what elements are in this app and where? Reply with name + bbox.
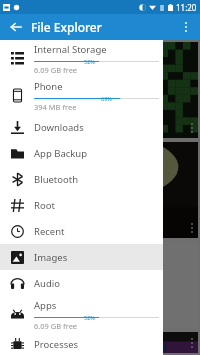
staticText: Downloads	[34, 121, 84, 134]
staticText: 52%	[84, 58, 95, 64]
staticText: Root	[34, 199, 55, 212]
button[interactable]: More options	[176, 17, 196, 37]
button[interactable]: Downloads	[0, 114, 163, 140]
button[interactable]: Phone	[0, 77, 163, 114]
button[interactable]: Internal Storage	[0, 40, 163, 77]
button[interactable]: App Backup	[0, 140, 163, 166]
staticText: 69%	[101, 95, 112, 101]
staticText: 52%	[84, 314, 95, 320]
button[interactable]: Audio	[0, 270, 163, 296]
button[interactable]: Root	[0, 192, 163, 218]
staticText: 394 MB free	[34, 102, 77, 112]
button[interactable]: Images	[0, 244, 163, 270]
staticText: Apps	[34, 299, 57, 312]
staticText: Phone	[34, 80, 63, 93]
staticText: Images	[34, 251, 68, 264]
staticText: Bluetooth	[34, 173, 79, 186]
staticText: File Explorer	[31, 19, 102, 35]
staticText: Audio	[34, 277, 60, 290]
staticText: 6.09 GB free	[34, 65, 78, 75]
staticText: Recent	[34, 225, 65, 238]
button[interactable]: Processes	[0, 333, 163, 355]
staticText: 11:20	[176, 2, 197, 13]
staticText: Internal Storage	[34, 43, 107, 56]
staticText: 6.09 GB free	[34, 321, 78, 331]
button[interactable]: Apps	[0, 296, 163, 333]
button[interactable]: Recent	[0, 218, 163, 244]
button[interactable]: Back	[6, 17, 26, 37]
staticText: Processes	[34, 338, 79, 351]
staticText: App Backup	[34, 147, 88, 160]
button[interactable]: Bluetooth	[0, 166, 163, 192]
